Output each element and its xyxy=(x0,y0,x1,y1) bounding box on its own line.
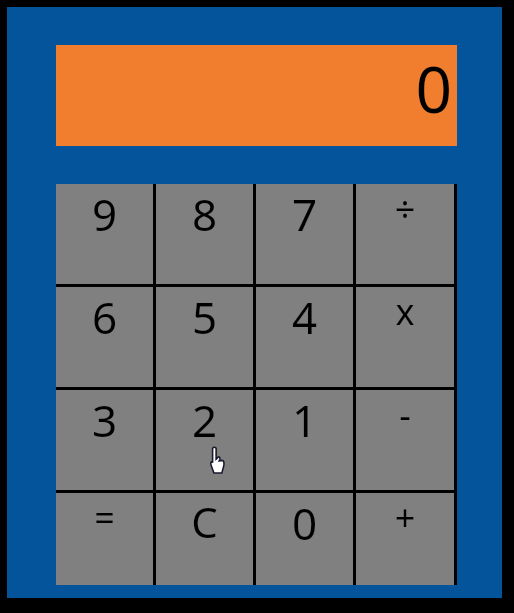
button[interactable]: 8 xyxy=(156,184,253,284)
staticText: 0 xyxy=(256,493,353,553)
staticText: 4 xyxy=(256,287,353,347)
staticText: 7 xyxy=(256,184,353,244)
button[interactable]: 4 xyxy=(256,287,353,387)
staticText: C xyxy=(156,493,253,550)
staticText: 3 xyxy=(56,390,153,450)
button[interactable]: + xyxy=(356,493,454,585)
button[interactable]: 9 xyxy=(56,184,153,284)
button[interactable]: - xyxy=(356,390,454,490)
staticText: 2 xyxy=(156,390,253,450)
button[interactable]: 0 xyxy=(256,493,353,585)
button[interactable]: Display 0 xyxy=(56,45,457,146)
button[interactable]: 3 xyxy=(56,390,153,490)
staticText: - xyxy=(356,390,454,439)
button[interactable]: = xyxy=(56,493,153,585)
button[interactable]: 6 xyxy=(56,287,153,387)
button[interactable]: ÷ xyxy=(356,184,454,284)
button[interactable]: 1 xyxy=(256,390,353,490)
button[interactable]: 2 xyxy=(156,390,253,490)
staticText: 1 xyxy=(256,390,353,450)
button[interactable]: 5 xyxy=(156,287,253,387)
staticText: = xyxy=(56,493,153,542)
staticText: + xyxy=(356,493,454,542)
staticText: 0 xyxy=(415,45,452,132)
button[interactable]: x xyxy=(356,287,454,387)
staticText: 8 xyxy=(156,184,253,244)
staticText: 5 xyxy=(156,287,253,347)
button[interactable]: C xyxy=(156,493,253,585)
staticText: 6 xyxy=(56,287,153,347)
button[interactable]: 7 xyxy=(256,184,353,284)
staticText: 9 xyxy=(56,184,153,244)
staticText: ÷ xyxy=(356,184,454,233)
staticText: x xyxy=(356,287,454,336)
